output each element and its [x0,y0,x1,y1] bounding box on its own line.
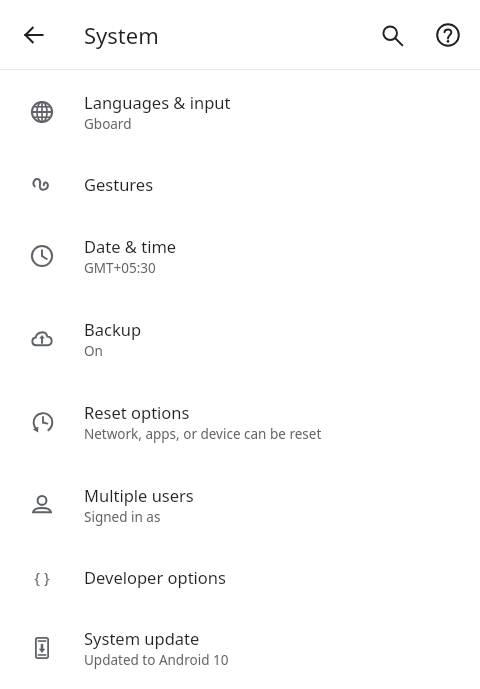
staticText: { } [34,567,50,587]
staticText: System update [84,627,200,649]
button[interactable]: Search [368,11,416,59]
button[interactable]: Multiple users [0,463,480,546]
staticText: Developer options [84,566,226,588]
button[interactable]: Gestures [0,153,480,214]
staticText: Date & time [84,235,177,257]
button[interactable]: Help [424,11,472,59]
staticText: Multiple users [84,484,194,506]
staticText: Signed in as [84,508,161,526]
staticText: On [84,342,103,360]
staticText: System [84,20,159,50]
button[interactable]: Reset options [0,380,480,463]
button[interactable]: { } [0,546,480,607]
staticText: Reset options [84,401,190,423]
staticText: Gestures [84,173,154,195]
staticText: Gboard [84,115,132,133]
staticText: Backup [84,318,142,340]
staticText: GMT+05:30 [84,259,156,277]
button[interactable]: Back [12,13,56,57]
staticText: Network, apps, or device can be reset [84,425,322,443]
button[interactable]: Languages & input [0,70,480,153]
button[interactable]: Backup [0,297,480,380]
staticText: Updated to Android 10 [84,651,229,669]
button[interactable]: System update [0,607,480,689]
button[interactable]: Date & time [0,214,480,297]
staticText: Languages & input [84,91,231,113]
